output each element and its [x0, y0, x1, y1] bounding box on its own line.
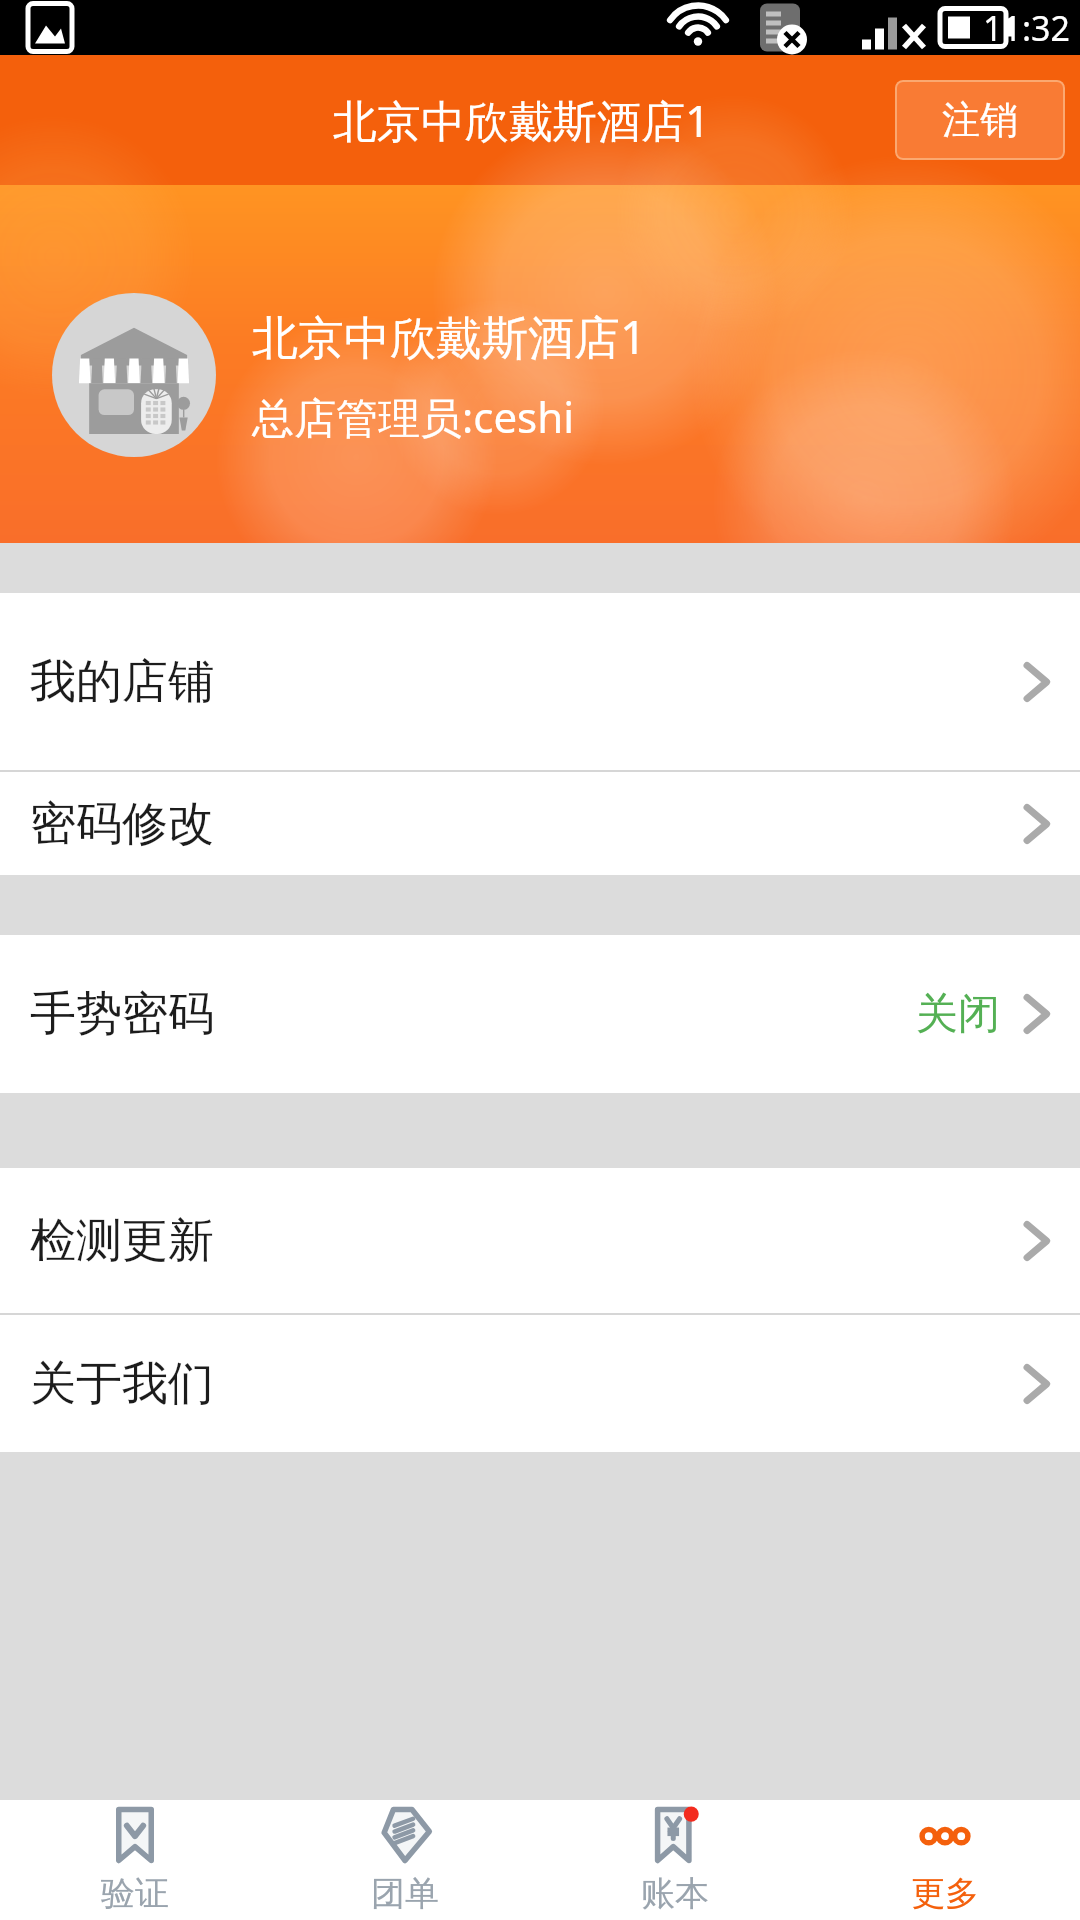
button[interactable]: 注销 [895, 80, 1065, 160]
button[interactable]: 更多 [810, 1800, 1080, 1920]
staticText: 检测更新 [30, 1212, 214, 1270]
staticText: 我的店铺 [30, 653, 214, 711]
staticText: 手势密码 [30, 985, 214, 1043]
button[interactable]: 验证 [0, 1800, 270, 1920]
staticText: 注销 [942, 96, 1018, 144]
staticText: 北京中欣戴斯酒店1 [252, 305, 647, 368]
button[interactable]: 我的店铺 [0, 593, 1080, 770]
button[interactable]: 账本 [540, 1800, 810, 1920]
staticText: 团单 [371, 1872, 439, 1915]
staticText: 更多 [911, 1872, 979, 1915]
staticText: 11:32 [983, 5, 1070, 51]
staticText: 总店管理员:ceshi [252, 388, 575, 445]
staticText: 密码修改 [30, 795, 214, 853]
button[interactable]: 团单 [270, 1800, 540, 1920]
staticText: 关于我们 [30, 1355, 214, 1413]
button[interactable]: 关于我们 [0, 1315, 1080, 1452]
button[interactable]: 检测更新 [0, 1168, 1080, 1313]
staticText: 关闭 [916, 988, 1000, 1041]
staticText: 验证 [101, 1872, 169, 1915]
button[interactable]: 密码修改 [0, 772, 1080, 875]
button[interactable]: 北京中欣戴斯酒店1 [0, 185, 1080, 543]
button[interactable]: 手势密码 [0, 935, 1080, 1093]
staticText: 账本 [641, 1872, 709, 1915]
staticText: 北京中欣戴斯酒店1 [333, 90, 711, 150]
